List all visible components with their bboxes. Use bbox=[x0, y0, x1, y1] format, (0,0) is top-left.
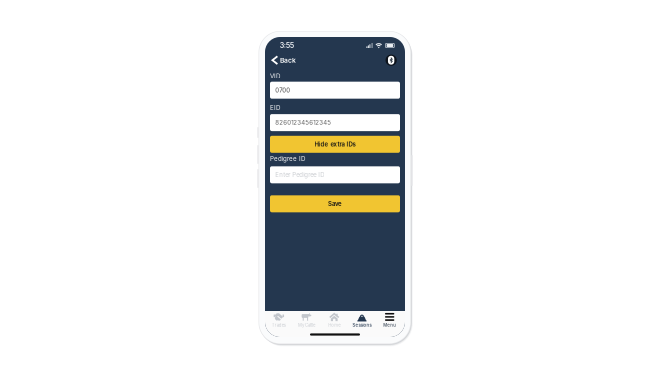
staticText: My Cattle bbox=[298, 323, 315, 328]
staticText: EID bbox=[270, 104, 280, 111]
button[interactable]: Hide extra IDs bbox=[270, 136, 400, 153]
button[interactable]: Back bbox=[271, 54, 298, 67]
staticText: Hide extra IDs bbox=[314, 141, 355, 148]
staticText: Pedigree ID bbox=[270, 155, 305, 162]
staticText: Home bbox=[328, 323, 340, 328]
button[interactable]: My Cattle bbox=[293, 312, 320, 328]
staticText: Back bbox=[280, 56, 296, 64]
staticText: VID bbox=[270, 72, 280, 80]
button[interactable]: Trades bbox=[265, 312, 293, 328]
button[interactable]: Save bbox=[270, 195, 400, 212]
button[interactable]: Menu bbox=[376, 312, 403, 328]
staticText: Menu bbox=[383, 323, 396, 328]
staticText: Enter Pedigree ID bbox=[275, 171, 324, 178]
staticText: Sessions bbox=[352, 323, 371, 328]
button[interactable]: Home bbox=[320, 312, 348, 328]
button[interactable]: Sessions bbox=[348, 312, 376, 328]
staticText: 3:55 bbox=[280, 41, 294, 50]
staticText: Save bbox=[328, 200, 342, 207]
staticText: 826012345612345 bbox=[275, 119, 331, 126]
staticText: 0700 bbox=[275, 87, 290, 94]
staticText: Trades bbox=[272, 323, 286, 328]
button[interactable]: Bluetooth bbox=[385, 54, 397, 66]
